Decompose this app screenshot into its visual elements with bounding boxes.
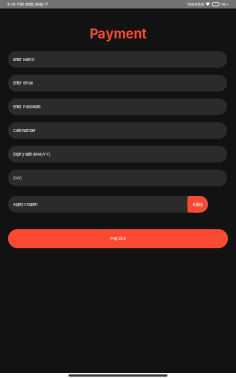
staticText: CVC [13, 175, 22, 180]
staticText: 16+ [221, 2, 229, 7]
staticText: 18.6KB/s [187, 2, 204, 7]
button[interactable]: Pay 245 [8, 229, 228, 248]
staticText: Expiry date (MM/YY) [13, 152, 50, 157]
staticText: Pay 245 [110, 236, 125, 241]
staticText: Card number [13, 128, 36, 133]
staticText: Apply [193, 202, 203, 207]
staticText: Enter email [13, 81, 33, 85]
staticText: Enter Password [13, 104, 40, 109]
staticText: Apply Coupon [13, 202, 37, 207]
staticText: 4:16 PM Wed, May 17 [7, 2, 48, 7]
staticText: Enter Name [13, 57, 34, 62]
button[interactable]: Apply [187, 196, 208, 213]
staticText: Payment [89, 25, 146, 42]
